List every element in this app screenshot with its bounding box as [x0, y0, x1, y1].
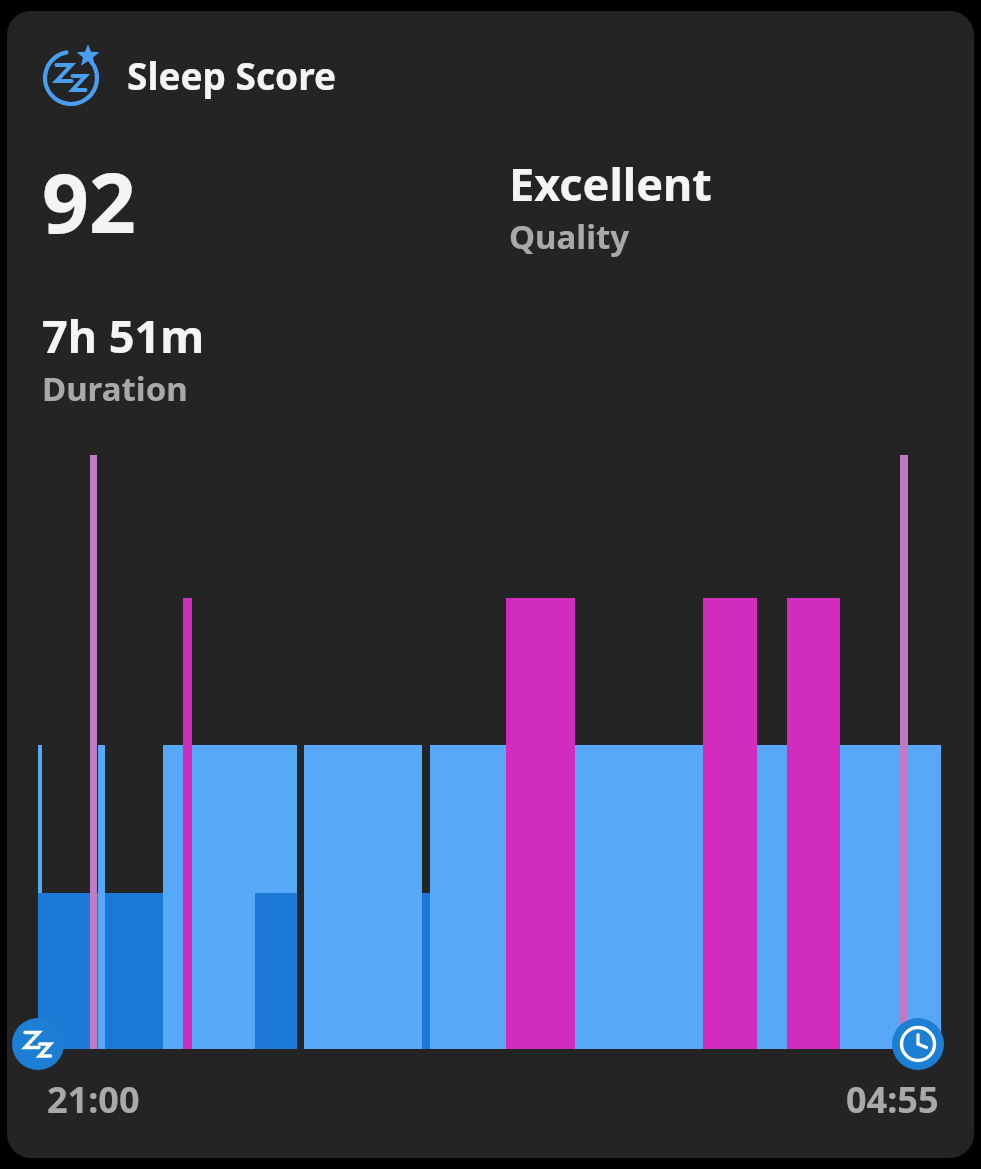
- staticText: Sleep Score: [127, 50, 337, 100]
- staticText: Excellent: [509, 153, 712, 214]
- button[interactable]: Wake time: [892, 1018, 944, 1070]
- button[interactable]: Sleep start: [12, 1018, 64, 1070]
- staticText: 21:00: [47, 1075, 140, 1124]
- button[interactable]: Sleep score: [40, 42, 337, 108]
- staticText: Duration: [42, 366, 188, 411]
- staticText: 92: [42, 145, 136, 257]
- button[interactable]: [7, 11, 974, 1158]
- staticText: 04:55: [846, 1075, 939, 1124]
- staticText: 7h 51m: [42, 305, 205, 366]
- other: Sleep score: [40, 42, 106, 108]
- staticText: Quality: [509, 214, 630, 259]
